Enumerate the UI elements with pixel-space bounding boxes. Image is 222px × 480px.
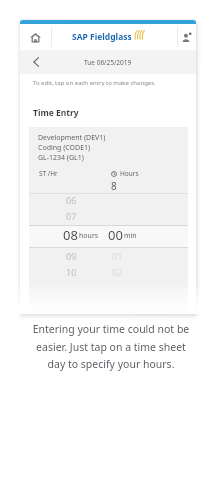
button[interactable]: Profile — [178, 24, 196, 50]
staticText: hours — [79, 231, 99, 241]
staticText: To edit, tap on each entry to make chang… — [33, 79, 156, 87]
button[interactable]: Back — [20, 50, 52, 74]
staticText: 10 — [66, 266, 77, 278]
staticText: min — [124, 231, 137, 241]
staticText: 08 — [63, 226, 78, 242]
staticText: 09 — [66, 250, 77, 262]
staticText: Time Entry — [33, 107, 79, 119]
staticText: 8 — [111, 179, 117, 193]
staticText: 01 — [112, 250, 123, 262]
staticText: 06 — [66, 194, 77, 206]
staticText: ST /Hr — [39, 169, 58, 178]
staticText: 07 — [66, 210, 77, 222]
staticText: Entering your time could not be easier. … — [26, 322, 196, 371]
staticText: 02 — [112, 266, 123, 278]
staticText: 00 — [108, 226, 123, 242]
staticText: SAP Fieldglass — [72, 31, 132, 43]
button[interactable]: Home — [20, 24, 51, 50]
staticText: Development (DEV1) — [38, 133, 106, 143]
staticText: Coding (CODE1) — [38, 143, 91, 153]
staticText: Tue 06/25/2019 — [84, 58, 132, 67]
staticText: Hours — [120, 169, 139, 178]
staticText: GL-1234 (GL1) — [38, 153, 84, 163]
